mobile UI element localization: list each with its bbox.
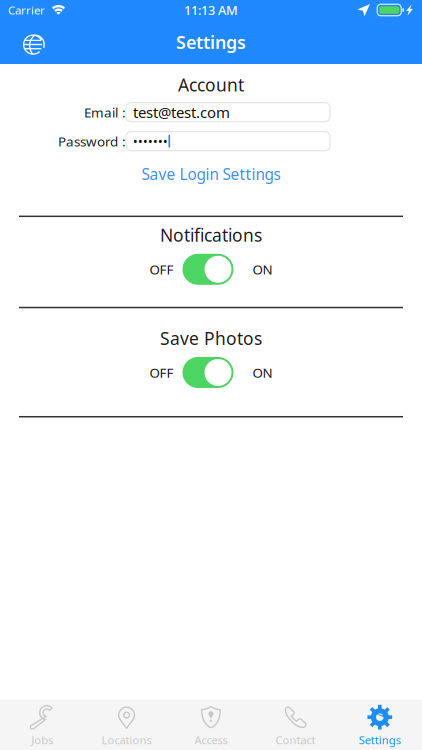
button[interactable]: Network xyxy=(0,19,62,64)
staticText: 11:13 AM xyxy=(184,1,238,19)
button[interactable]: test@test.com xyxy=(126,103,330,122)
staticText: OFF xyxy=(149,363,173,382)
staticText: test@test.com xyxy=(133,102,230,122)
staticText: Email : xyxy=(84,103,126,121)
staticText: Carrier xyxy=(8,2,45,18)
button[interactable]: ••••••• xyxy=(126,132,330,151)
staticText: Password : xyxy=(58,132,126,150)
staticText: Account xyxy=(178,73,244,97)
staticText: OFF xyxy=(149,260,173,278)
staticText: Save Photos xyxy=(160,326,262,350)
staticText: Jobs xyxy=(31,732,53,747)
button[interactable]: Settings xyxy=(338,698,422,750)
staticText: Locations xyxy=(102,732,152,747)
staticText: ••••••• xyxy=(133,133,168,149)
button[interactable]: Access xyxy=(169,698,253,750)
staticText: Contact xyxy=(275,732,315,747)
button[interactable]: Locations xyxy=(84,698,169,750)
staticText: Settings xyxy=(176,30,246,54)
staticText: ON xyxy=(252,260,272,278)
button[interactable]: Save Photos xyxy=(182,357,233,388)
staticText: Notifications xyxy=(160,223,262,247)
staticText: ON xyxy=(252,363,272,382)
button[interactable]: Contact xyxy=(253,698,338,750)
button[interactable]: Jobs xyxy=(0,698,84,750)
staticText: Settings xyxy=(359,732,401,747)
button[interactable]: Notifications xyxy=(182,254,233,285)
staticText: Save Login Settings xyxy=(141,164,280,185)
staticText: Access xyxy=(194,732,227,747)
button[interactable]: Save Login Settings xyxy=(131,151,290,185)
